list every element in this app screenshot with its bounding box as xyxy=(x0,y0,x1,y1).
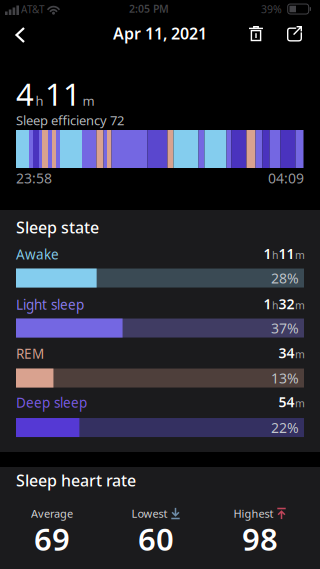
staticText: 69 xyxy=(34,518,70,560)
staticText: 04:09 xyxy=(268,168,304,188)
staticText: h xyxy=(35,92,43,109)
staticText: Average xyxy=(31,506,73,521)
staticText: 60 xyxy=(138,518,174,560)
staticText: m xyxy=(295,248,305,262)
staticText: m xyxy=(295,396,305,410)
staticText: 54 xyxy=(278,392,294,411)
staticText: Highest xyxy=(233,506,273,521)
staticText: Deep sleep xyxy=(16,393,87,412)
staticText: m xyxy=(82,92,94,109)
staticText: 28% xyxy=(271,268,299,288)
staticText: m xyxy=(295,347,305,361)
staticText: Sleep efficiency 72 xyxy=(16,111,124,129)
staticText: Light sleep xyxy=(16,295,84,314)
staticText: 37% xyxy=(271,318,299,338)
staticText: 32 xyxy=(278,294,294,313)
button[interactable]: Share xyxy=(278,19,311,48)
staticText: Sleep heart rate xyxy=(16,469,136,491)
staticText: 39% xyxy=(261,2,282,16)
staticText: 98 xyxy=(242,518,278,560)
staticText: 13% xyxy=(271,368,299,388)
staticText: Apr 11, 2021 xyxy=(113,22,207,44)
staticText: h xyxy=(272,298,278,312)
button[interactable]: Back xyxy=(0,19,40,49)
staticText: 22% xyxy=(271,418,299,437)
staticText: 4 xyxy=(16,72,34,115)
staticText: 11 xyxy=(45,72,81,115)
staticText: 1 xyxy=(263,294,271,313)
staticText: AT&T xyxy=(21,2,45,16)
staticText: 1 xyxy=(263,244,271,263)
staticText: Awake xyxy=(16,245,59,263)
staticText: REM xyxy=(16,344,44,363)
staticText: 34 xyxy=(278,343,294,362)
staticText: m xyxy=(295,298,305,312)
staticText: 23:58 xyxy=(16,168,52,188)
staticText: Sleep state xyxy=(16,216,99,238)
button[interactable]: Delete xyxy=(239,19,273,48)
staticText: 2:05 PM xyxy=(129,1,169,16)
staticText: h xyxy=(272,248,278,262)
staticText: Lowest xyxy=(131,506,167,521)
staticText: 11 xyxy=(278,244,294,263)
